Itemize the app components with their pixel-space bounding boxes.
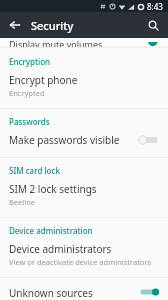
staticText: Encrypted xyxy=(9,88,45,98)
staticText: Device administration xyxy=(9,225,93,236)
staticText: 8:43 xyxy=(147,1,163,12)
button[interactable]: Device administrators xyxy=(0,239,168,269)
staticText: Security xyxy=(31,18,74,33)
button[interactable]: Toggle xyxy=(137,42,159,47)
button[interactable]: Toggle on xyxy=(138,286,160,298)
button[interactable]: SIM 2 lock settings xyxy=(0,179,168,209)
button[interactable]: Encrypt phone xyxy=(0,70,168,100)
staticText: Device administrators xyxy=(9,242,112,256)
button[interactable]: Unknown sources xyxy=(0,283,168,300)
staticText: Display mute volumes xyxy=(9,38,103,47)
staticText: Encryption xyxy=(9,56,51,67)
button[interactable]: Search xyxy=(142,14,164,36)
staticText: Encrypt phone xyxy=(9,73,78,87)
button[interactable]: Make passwords visible xyxy=(0,130,168,149)
staticText: Passwords xyxy=(9,116,50,127)
staticText: SIM 2 lock settings xyxy=(9,182,97,196)
staticText: View or deactivate device administrators xyxy=(9,257,152,267)
button[interactable]: Toggle off xyxy=(138,133,160,147)
button[interactable]: Back xyxy=(4,14,26,36)
staticText: Unknown sources xyxy=(9,286,93,298)
staticText: Make passwords visible xyxy=(9,133,120,147)
staticText: SIM card lock xyxy=(9,165,60,176)
staticText: Beeline xyxy=(9,197,36,207)
